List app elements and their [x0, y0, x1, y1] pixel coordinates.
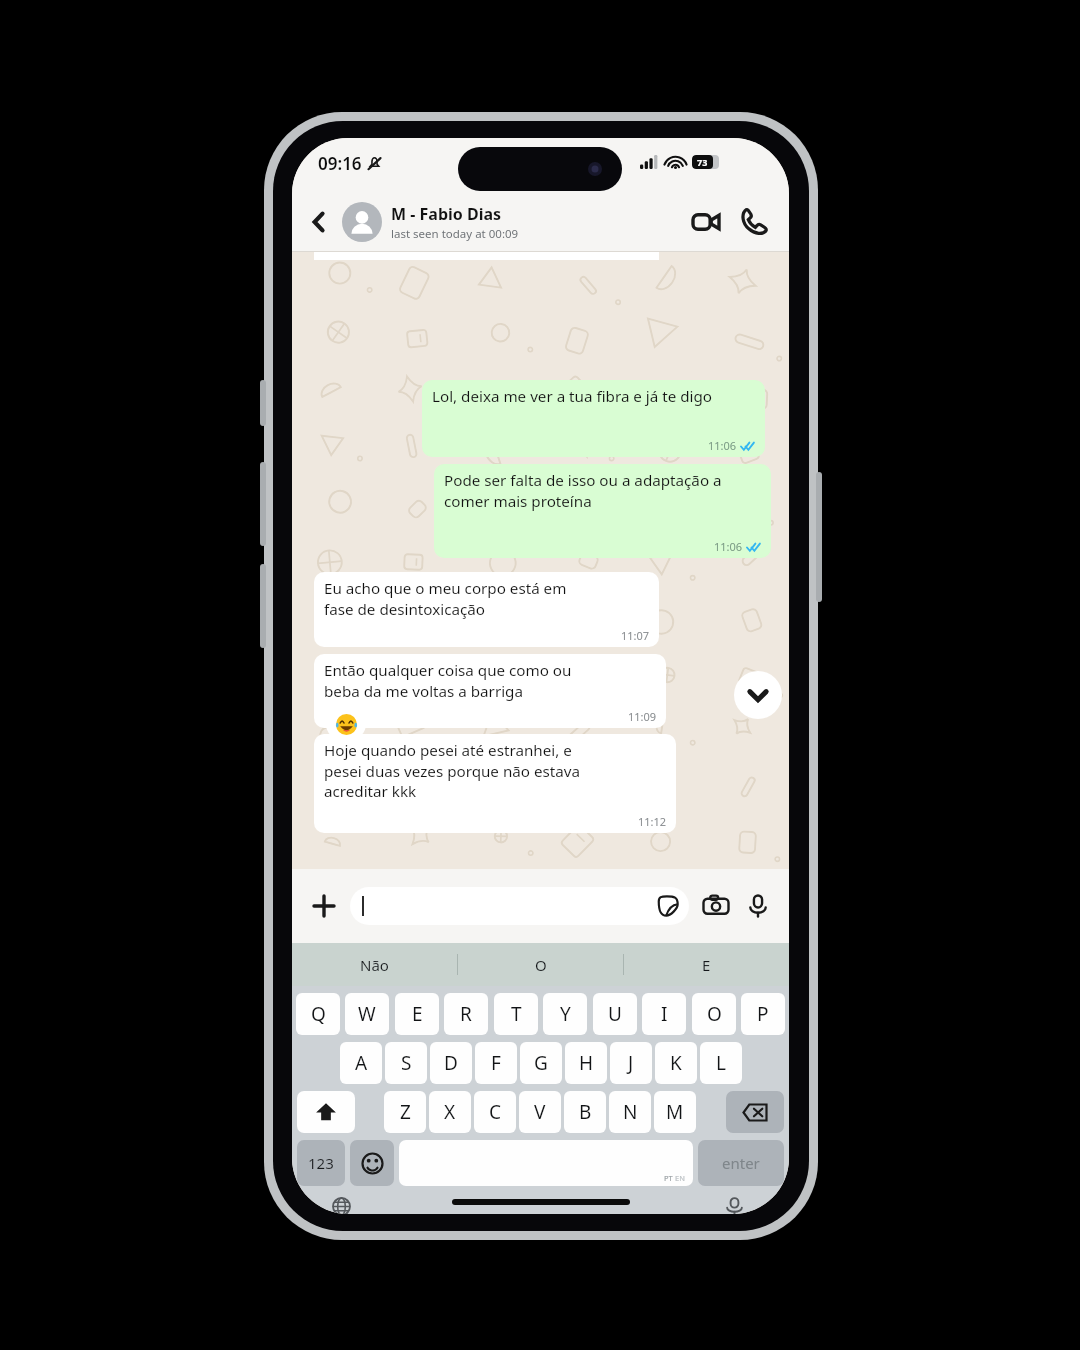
button[interactable]: Y — [543, 993, 587, 1035]
staticText: 123 — [308, 1153, 334, 1173]
staticText: Q — [311, 1001, 326, 1027]
staticText: P — [757, 1001, 769, 1027]
button[interactable]: C — [474, 1091, 516, 1133]
staticText: N — [623, 1099, 638, 1125]
button[interactable]: F — [475, 1042, 517, 1084]
staticText: last seen today at 00:09 — [391, 226, 519, 242]
button[interactable]: E — [395, 993, 439, 1035]
button[interactable]: Attach — [306, 888, 342, 924]
button[interactable]: P — [741, 993, 785, 1035]
staticText: 11:06 — [714, 539, 743, 554]
staticText: E — [412, 1001, 423, 1027]
button[interactable]: I — [642, 993, 686, 1035]
button[interactable]: enter — [698, 1140, 784, 1186]
button[interactable]: Dictation — [717, 1197, 751, 1214]
staticText: H — [579, 1050, 594, 1076]
staticText: 11:09 — [628, 709, 657, 724]
button[interactable]: O — [692, 993, 736, 1035]
button[interactable]: Reaction laughing — [326, 708, 366, 740]
staticText: 11:06 — [708, 438, 737, 453]
button[interactable]: Z — [384, 1091, 426, 1133]
button[interactable]: G — [520, 1042, 562, 1084]
staticText: J — [628, 1050, 634, 1076]
button[interactable]: 123 — [297, 1140, 345, 1186]
staticText: I — [661, 1001, 668, 1027]
staticText: EN — [675, 1173, 685, 1183]
staticText: O — [707, 1001, 722, 1027]
button[interactable]: Scroll to bottom — [734, 671, 782, 719]
staticText: PT — [664, 1173, 673, 1183]
button[interactable]: W — [345, 993, 389, 1035]
button[interactable]: L — [700, 1042, 742, 1084]
staticText: K — [670, 1050, 682, 1076]
button[interactable] — [350, 887, 689, 925]
staticText: Y — [560, 1001, 571, 1027]
button[interactable]: R — [444, 993, 488, 1035]
button[interactable]: K — [655, 1042, 697, 1084]
button[interactable]: X — [429, 1091, 471, 1133]
button[interactable]: M — [654, 1091, 696, 1133]
button[interactable]: A — [340, 1042, 382, 1084]
staticText: G — [534, 1050, 548, 1076]
button[interactable]: Q — [296, 993, 340, 1035]
button[interactable]: E — [624, 943, 789, 986]
button[interactable]: Shift — [297, 1091, 355, 1133]
staticText: Hoje quando pesei até estranhei, e pesei… — [324, 740, 608, 801]
button[interactable]: U — [593, 993, 637, 1035]
staticText: V — [534, 1099, 546, 1125]
button[interactable]: Backspace — [726, 1091, 784, 1133]
staticText: A — [355, 1050, 368, 1076]
button[interactable]: Voice call — [733, 201, 775, 243]
button[interactable]: Emoji — [350, 1140, 394, 1186]
button[interactable]: PT — [399, 1140, 693, 1186]
staticText: Z — [400, 1099, 411, 1125]
button[interactable]: V — [519, 1091, 561, 1133]
staticText: C — [489, 1099, 502, 1125]
button[interactable]: Back — [300, 203, 338, 241]
staticText: 11:07 — [621, 628, 650, 643]
staticText: U — [608, 1001, 622, 1027]
staticText: enter — [722, 1153, 760, 1173]
staticText: Então qualquer coisa que como ou beba da… — [324, 660, 598, 701]
button[interactable]: B — [564, 1091, 606, 1133]
button[interactable]: M - Fabio Dias — [342, 202, 685, 242]
staticText: R — [460, 1001, 472, 1027]
staticText: Lol, deixa me ver a tua fibra e já te di… — [432, 386, 713, 407]
staticText: D — [444, 1050, 458, 1076]
staticText: E — [702, 955, 711, 975]
staticText: S — [401, 1050, 412, 1076]
button[interactable]: Não — [292, 943, 457, 986]
staticText: F — [491, 1050, 501, 1076]
staticText: Eu acho que o meu corpo está em fase de … — [324, 578, 591, 619]
staticText: O — [535, 955, 547, 975]
staticText: T — [511, 1001, 522, 1027]
button[interactable]: D — [430, 1042, 472, 1084]
staticText: 11:12 — [638, 814, 667, 829]
button[interactable]: Voice message — [741, 889, 775, 923]
staticText: X — [444, 1099, 456, 1125]
button[interactable]: T — [494, 993, 538, 1035]
staticText: B — [579, 1099, 592, 1125]
button[interactable]: O — [458, 943, 623, 986]
staticText: 09:16 — [318, 152, 362, 175]
button[interactable]: Change keyboard — [324, 1197, 358, 1214]
staticText: W — [358, 1001, 376, 1027]
button[interactable]: Video call — [685, 201, 727, 243]
staticText: M - Fabio Dias — [391, 203, 502, 225]
staticText: Não — [360, 955, 389, 975]
staticText: L — [716, 1050, 726, 1076]
button[interactable]: H — [565, 1042, 607, 1084]
staticText: Pode ser falta de isso ou a adaptação a … — [444, 470, 759, 511]
button[interactable]: Camera — [699, 889, 733, 923]
button[interactable]: S — [385, 1042, 427, 1084]
staticText: M — [666, 1099, 684, 1125]
button[interactable]: Hoje quando pesei até estranhei, e pesei… — [314, 734, 676, 833]
staticText: 73 — [697, 156, 708, 168]
button[interactable]: Pode ser falta de isso ou a adaptação a … — [434, 464, 771, 558]
button[interactable]: N — [609, 1091, 651, 1133]
button[interactable]: J — [610, 1042, 652, 1084]
button[interactable]: Então qualquer coisa que como ou beba da… — [314, 654, 666, 728]
button[interactable]: Lol, deixa me ver a tua fibra e já te di… — [422, 380, 765, 457]
button[interactable]: Eu acho que o meu corpo está em fase de … — [314, 572, 659, 647]
